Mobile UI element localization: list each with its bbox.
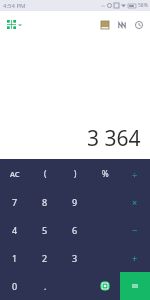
button[interactable]: 6 <box>60 216 90 244</box>
button[interactable]: % <box>90 159 120 188</box>
button[interactable]: History <box>130 16 147 33</box>
staticText: 5 <box>42 224 48 236</box>
button[interactable]: Equals <box>120 272 150 300</box>
button[interactable]: 1 <box>0 244 30 272</box>
button[interactable]: AC <box>0 159 30 188</box>
staticText: ÷ <box>132 168 138 180</box>
staticText: ) <box>74 168 77 179</box>
staticText: 3 <box>72 252 78 264</box>
button[interactable]: 8 <box>30 188 60 216</box>
button[interactable]: ( <box>30 159 60 188</box>
staticText: 58% <box>138 2 148 9</box>
button[interactable]: Backspace <box>90 272 120 300</box>
staticText: 1 <box>12 252 18 264</box>
staticText: % <box>102 168 109 179</box>
staticText: ( <box>44 168 47 179</box>
staticText: 4 <box>12 224 18 236</box>
button[interactable]: 2 <box>30 244 60 272</box>
staticText: . <box>44 280 47 292</box>
button[interactable]: × <box>120 188 150 216</box>
staticText: 3 364 <box>87 124 141 153</box>
button[interactable]: 9 <box>60 188 90 216</box>
staticText: AC <box>10 169 20 179</box>
button[interactable]: Notes <box>96 16 113 33</box>
staticText: 4:54 PM <box>3 2 26 10</box>
button[interactable]: Calculator mode <box>4 17 25 32</box>
staticText: − <box>132 224 138 236</box>
staticText: 2 <box>42 252 48 264</box>
button[interactable]: 3 <box>60 244 90 272</box>
staticText: 0 <box>12 280 18 292</box>
button[interactable]: Graph <box>113 16 130 33</box>
staticText: 8 <box>42 196 48 208</box>
button[interactable]: 4 <box>0 216 30 244</box>
staticText: + <box>132 252 138 264</box>
button[interactable]: ÷ <box>120 159 150 188</box>
staticText: 6 <box>72 224 78 236</box>
button[interactable]: . <box>30 272 60 300</box>
staticText: 7 <box>12 196 18 208</box>
staticText: × <box>132 196 138 208</box>
button[interactable]: 7 <box>0 188 30 216</box>
button[interactable]: − <box>120 216 150 244</box>
button[interactable]: + <box>120 244 150 272</box>
staticText: 9 <box>72 196 78 208</box>
button[interactable]: ) <box>60 159 90 188</box>
button[interactable]: 0 <box>0 272 30 300</box>
button[interactable]: 5 <box>30 216 60 244</box>
